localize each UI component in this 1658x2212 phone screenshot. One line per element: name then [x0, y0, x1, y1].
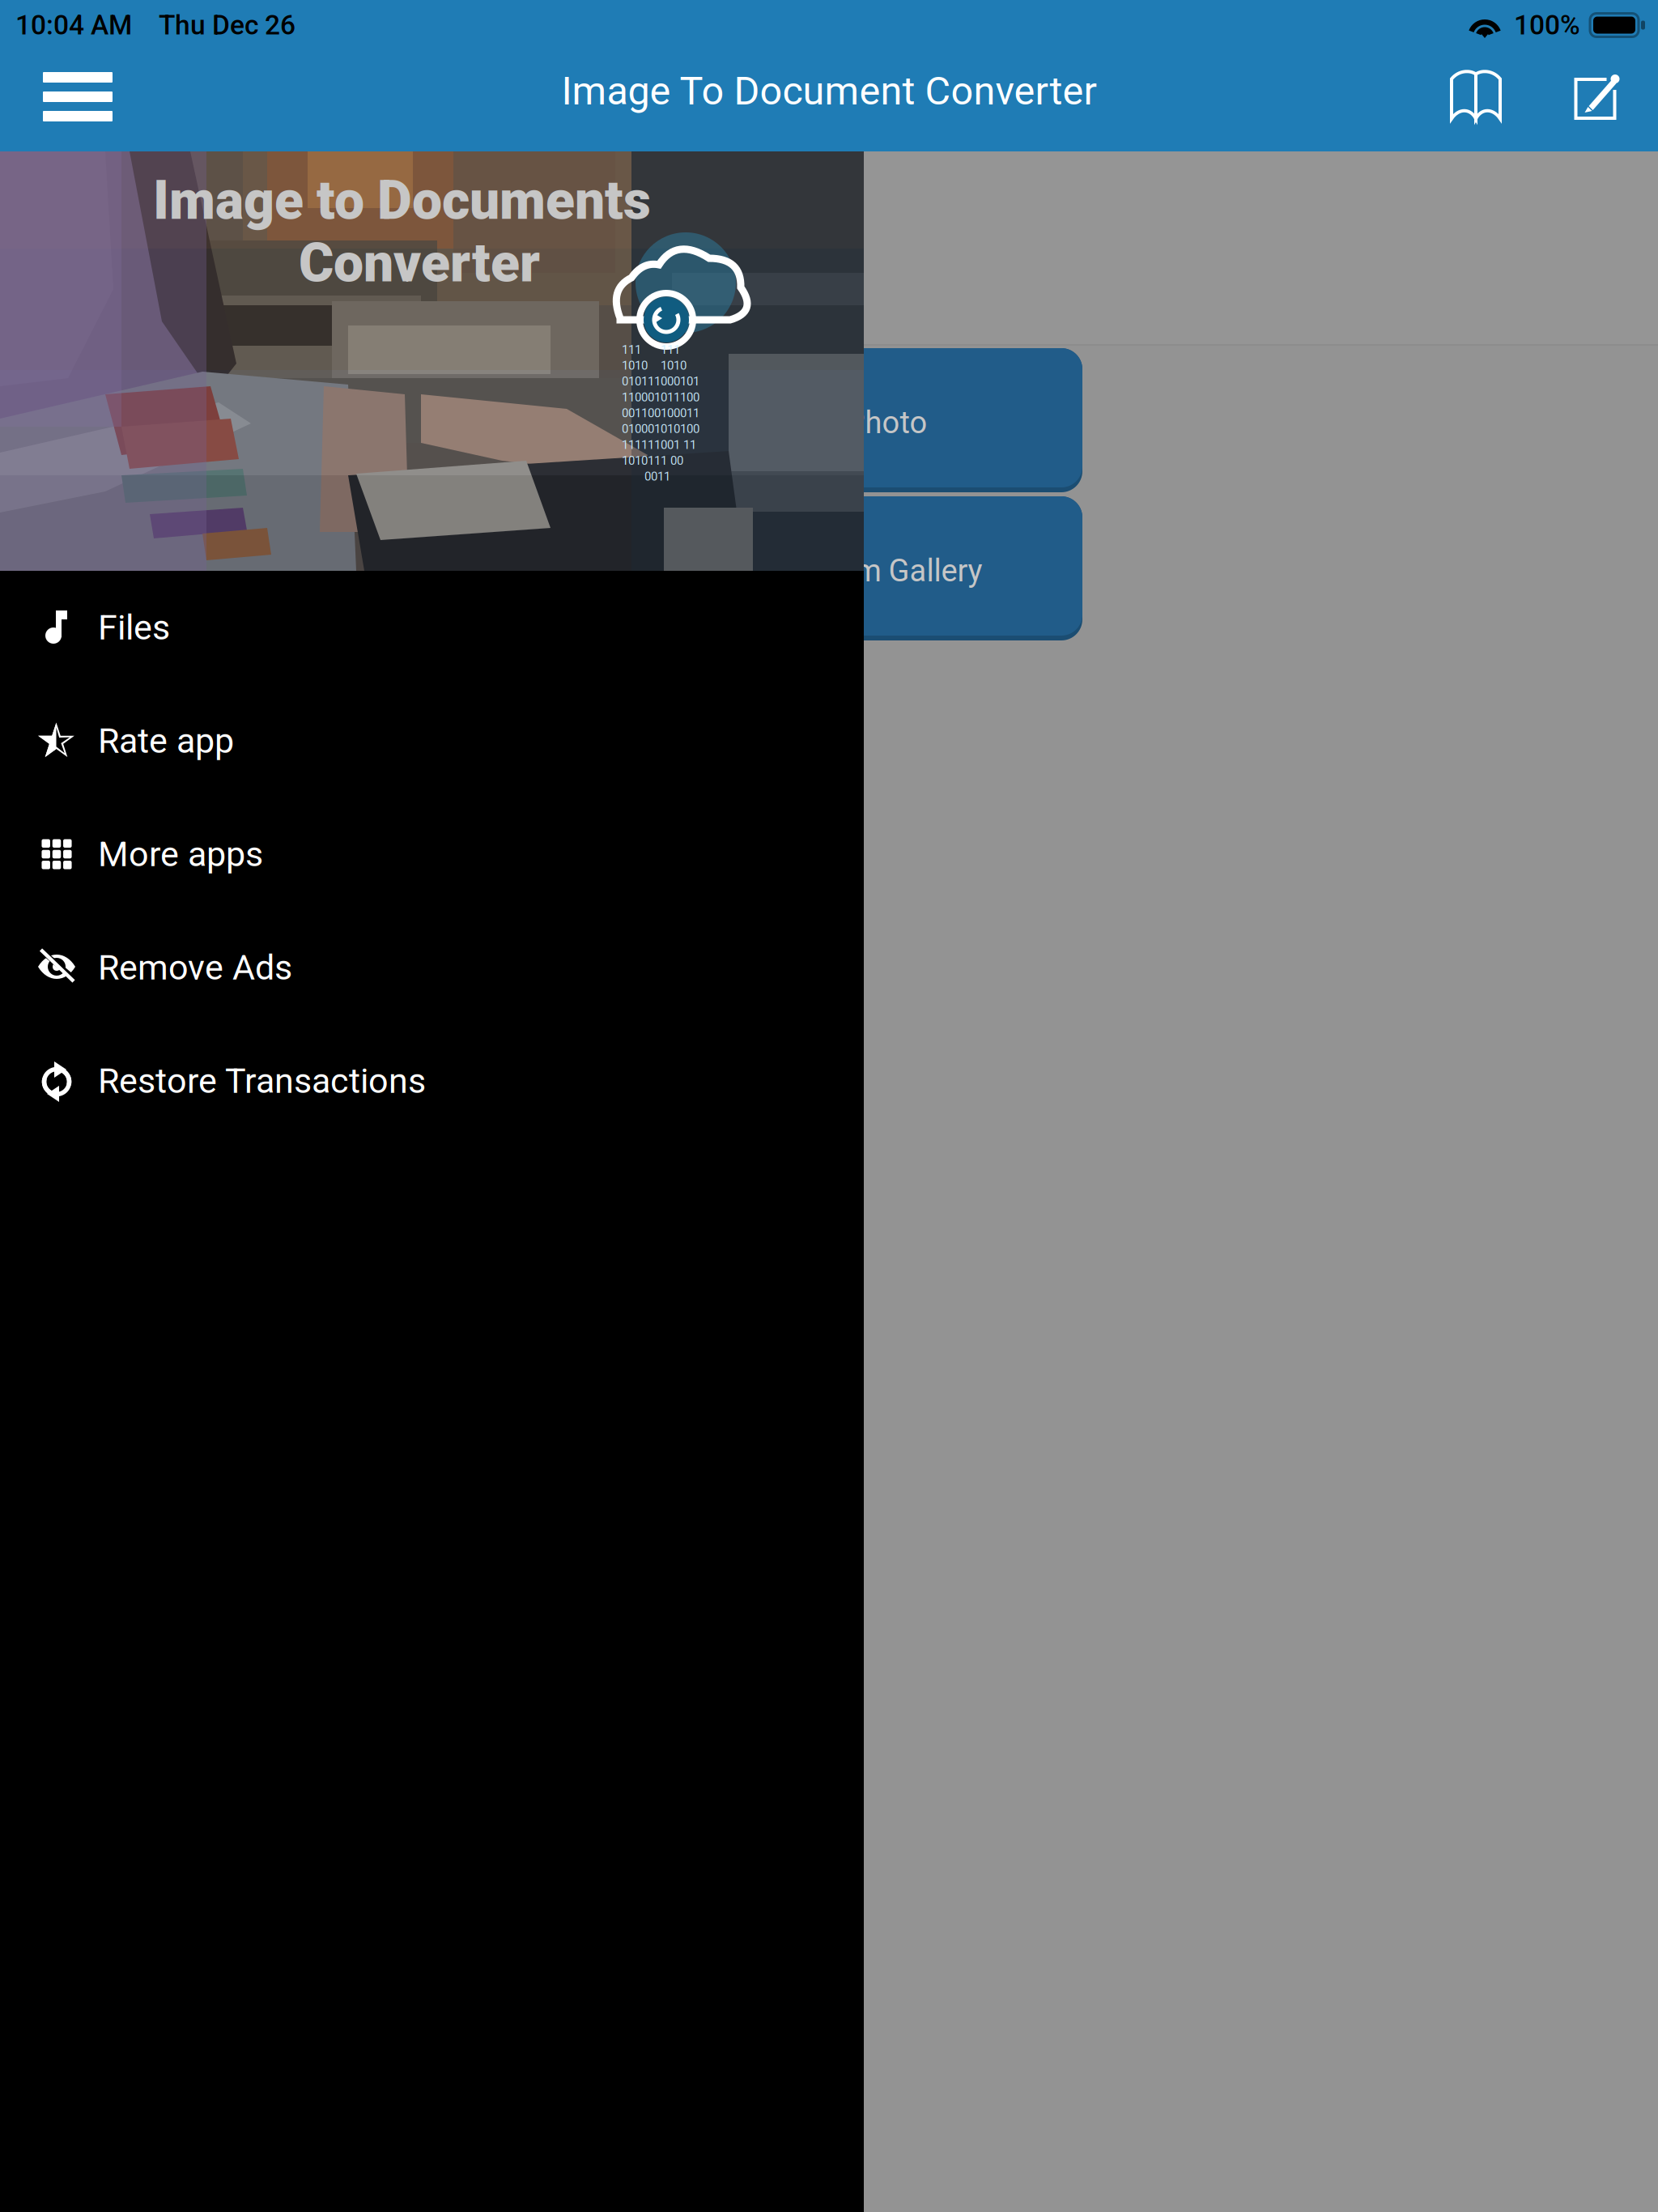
button[interactable]: Take Photo [618, 348, 1082, 492]
button[interactable]: Remove Ads [0, 911, 864, 1024]
staticText: 10:04 AM [15, 9, 132, 41]
staticText: Select From Gallery [718, 553, 982, 589]
staticText: 001100100011 [622, 406, 699, 420]
staticText: Restore Transactions [98, 1060, 426, 1101]
button[interactable]: More apps [0, 798, 864, 911]
button[interactable]: Files [0, 571, 864, 684]
staticText: Image To Document Converter [561, 68, 1097, 114]
button[interactable]: Bookmarks [1423, 53, 1514, 149]
staticText: 111111001 11 [622, 438, 696, 452]
staticText: 111 111 [622, 342, 680, 357]
staticText: 010001010100 [622, 422, 699, 436]
staticText: 100% [1514, 9, 1580, 41]
button[interactable]: New Document [1550, 53, 1640, 149]
staticText: Rate app [98, 720, 234, 761]
staticText: 010111000101 [622, 374, 699, 388]
button[interactable]: Rate app [0, 684, 864, 798]
staticText: More apps [98, 834, 263, 875]
staticText: 1010 1010 [622, 358, 687, 373]
button[interactable]: Restore Transactions [0, 1024, 864, 1138]
staticText: 0011 [622, 469, 670, 484]
button[interactable]: Menu [30, 53, 125, 149]
staticText: Converter [299, 232, 540, 294]
staticText: Thu Dec 26 [159, 9, 295, 41]
staticText: 110001011100 [622, 390, 699, 404]
staticText: Image to Documents [153, 169, 651, 232]
staticText: Remove Ads [98, 947, 292, 988]
staticText: Take Photo [773, 405, 927, 441]
button[interactable]: Select From Gallery [618, 496, 1082, 640]
staticText: Files [98, 607, 170, 648]
staticText: 1010111 00 [622, 453, 683, 468]
